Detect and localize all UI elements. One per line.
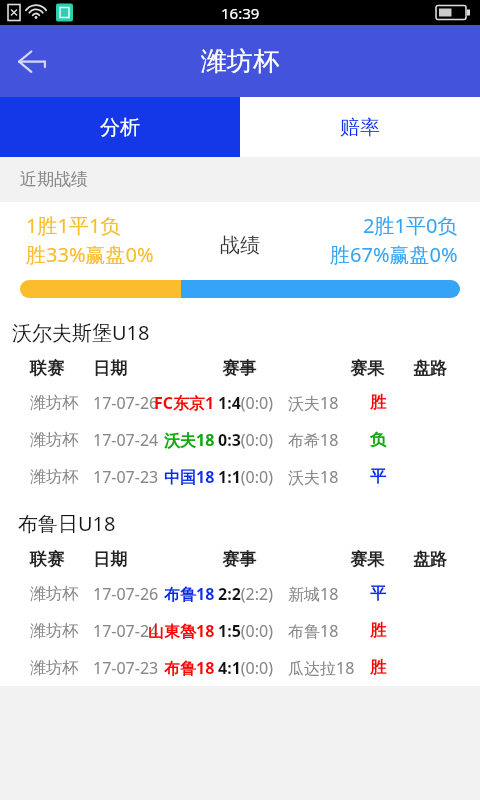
staticText: 0:3(0:0) bbox=[218, 429, 273, 451]
staticText: 布鲁18 bbox=[164, 583, 215, 605]
staticText: 沃夫18 bbox=[288, 466, 339, 488]
staticText: 1:5(0:0) bbox=[218, 620, 273, 642]
staticText: 布鲁18 bbox=[288, 620, 339, 642]
staticText: 潍坊杯 bbox=[30, 621, 78, 641]
staticText: 潍坊杯 bbox=[30, 467, 78, 487]
staticText: 盘路 bbox=[413, 358, 447, 379]
staticText: 胜 bbox=[370, 658, 386, 678]
staticText: 山東魯18 bbox=[148, 620, 215, 642]
staticText: 2:2(2:2) bbox=[218, 583, 273, 605]
staticText: 赛事 bbox=[222, 358, 256, 379]
staticText: 胜 bbox=[370, 621, 386, 641]
button[interactable]: 潍坊杯 bbox=[0, 575, 480, 612]
staticText: 瓜达拉18 bbox=[288, 657, 355, 679]
button[interactable]: 分析 bbox=[0, 97, 240, 157]
staticText: 联赛 bbox=[30, 358, 64, 379]
staticText: 胜 bbox=[370, 393, 386, 413]
staticText: 1胜1平1负 bbox=[26, 212, 121, 239]
button[interactable]: Back bbox=[4, 33, 60, 89]
button[interactable]: 潍坊杯 bbox=[0, 421, 480, 458]
staticText: 战绩 bbox=[220, 233, 260, 258]
staticText: 1:4(0:0) bbox=[218, 392, 273, 414]
staticText: 沃夫18 bbox=[164, 429, 215, 451]
staticText: 布鲁18 bbox=[164, 657, 215, 679]
button[interactable]: 潍坊杯 bbox=[0, 612, 480, 649]
staticText: 潍坊杯 bbox=[201, 45, 279, 78]
staticText: 中国18 bbox=[164, 466, 215, 488]
staticText: 17-07-23 bbox=[93, 466, 159, 488]
staticText: 布鲁日U18 bbox=[18, 510, 116, 537]
staticText: 平 bbox=[370, 467, 386, 487]
staticText: 17-07-26 bbox=[93, 583, 159, 605]
staticText: 潍坊杯 bbox=[30, 658, 78, 678]
staticText: 盘路 bbox=[413, 549, 447, 570]
staticText: FC东京1 bbox=[154, 392, 215, 414]
staticText: 16:39 bbox=[221, 3, 260, 23]
staticText: 日期 bbox=[93, 549, 127, 570]
button[interactable]: 潍坊杯 bbox=[0, 649, 480, 686]
staticText: 17-07-24 bbox=[93, 429, 159, 451]
staticText: 负 bbox=[370, 430, 386, 450]
button[interactable]: 赔率 bbox=[240, 97, 480, 157]
staticText: 赛果 bbox=[350, 358, 384, 379]
staticText: 新城18 bbox=[288, 583, 339, 605]
staticText: 联赛 bbox=[30, 549, 64, 570]
staticText: 沃尔夫斯堡U18 bbox=[12, 319, 150, 346]
staticText: 4:1(0:0) bbox=[218, 657, 273, 679]
staticText: 赔率 bbox=[340, 115, 380, 140]
staticText: 近期战绩 bbox=[20, 169, 88, 190]
button[interactable]: 潍坊杯 bbox=[0, 458, 480, 495]
staticText: 2胜1平0负 bbox=[363, 212, 458, 239]
staticText: 17-07-23 bbox=[93, 657, 159, 679]
staticText: 赛果 bbox=[350, 549, 384, 570]
staticText: 沃夫18 bbox=[288, 392, 339, 414]
staticText: 赛事 bbox=[222, 549, 256, 570]
staticText: 17-07-24 bbox=[93, 620, 159, 642]
staticText: 布希18 bbox=[288, 429, 339, 451]
staticText: 胜67%赢盘0% bbox=[330, 241, 458, 268]
staticText: 潍坊杯 bbox=[30, 393, 78, 413]
staticText: 日期 bbox=[93, 358, 127, 379]
staticText: 胜33%赢盘0% bbox=[26, 241, 154, 268]
button[interactable]: 潍坊杯 bbox=[0, 384, 480, 421]
staticText: 17-07-26 bbox=[93, 392, 159, 414]
staticText: 分析 bbox=[100, 115, 140, 140]
staticText: 平 bbox=[370, 584, 386, 604]
staticText: 1:1(0:0) bbox=[218, 466, 273, 488]
staticText: 潍坊杯 bbox=[30, 430, 78, 450]
staticText: 潍坊杯 bbox=[30, 584, 78, 604]
